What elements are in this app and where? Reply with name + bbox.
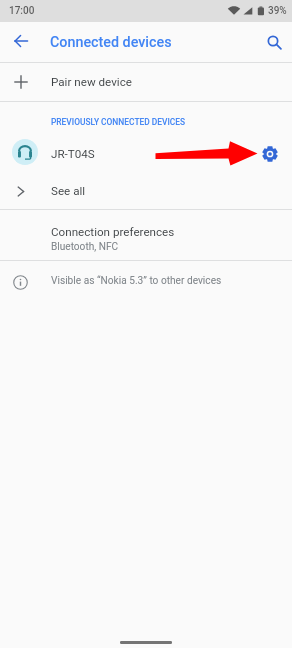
staticText: See all — [51, 184, 86, 198]
button[interactable]: Device settings — [253, 137, 287, 171]
staticText: PREVIOUSLY CONNECTED DEVICES — [51, 117, 186, 127]
staticText: JR-T04S — [51, 147, 95, 161]
staticText: Bluetooth, NFC — [51, 241, 119, 253]
staticText: 17:00 — [9, 5, 35, 17]
staticText: Visible as “Nokia 5.3” to other devices — [51, 275, 222, 287]
button[interactable]: See all — [0, 174, 292, 209]
button[interactable]: JR-T04S — [0, 134, 252, 174]
button[interactable]: Connection preferences — [0, 210, 292, 260]
staticText: Pair new device — [51, 75, 132, 89]
staticText: Connected devices — [50, 34, 172, 51]
button[interactable]: Back — [2, 22, 40, 60]
button[interactable]: Search — [255, 23, 292, 61]
staticText: 39% — [268, 5, 287, 17]
staticText: Connection preferences — [51, 225, 175, 239]
button[interactable]: Pair new device — [0, 63, 292, 101]
